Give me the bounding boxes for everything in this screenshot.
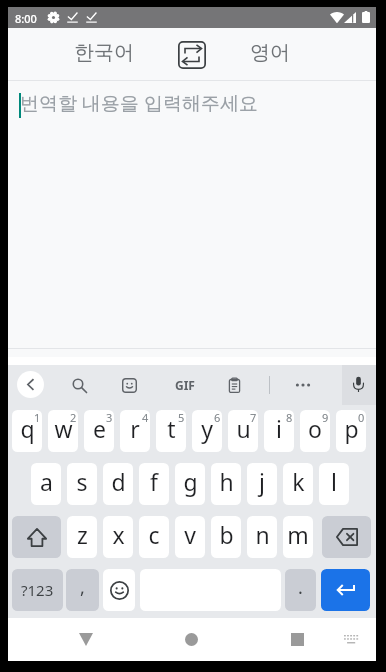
staticText: z [77, 519, 88, 550]
button[interactable]: . [285, 569, 316, 611]
button[interactable]: , [66, 569, 99, 611]
button[interactable]: Search [65, 365, 93, 405]
staticText: 번역할 내용을 입력해주세요 [20, 90, 258, 116]
button[interactable]: Recents [269, 618, 325, 661]
button[interactable]: w [48, 410, 78, 452]
staticText: d [111, 466, 126, 497]
button[interactable]: Switch keyboard [334, 618, 368, 661]
staticText: w [54, 413, 73, 444]
button[interactable]: Home [163, 618, 219, 661]
button[interactable]: b [211, 516, 241, 558]
staticText: u [236, 413, 251, 444]
button[interactable]: e [84, 410, 114, 452]
staticText: b [219, 519, 234, 550]
button[interactable]: n [247, 516, 277, 558]
button[interactable]: 번역할 내용을 입력해주세요 [8, 81, 376, 357]
button[interactable]: More options [289, 365, 317, 405]
other: Space [8, 569, 149, 611]
button[interactable]: c [139, 516, 169, 558]
button[interactable]: 영어 [232, 28, 308, 81]
button[interactable]: Swap languages [178, 41, 206, 69]
button[interactable]: l [319, 463, 349, 505]
staticText: 9 [322, 410, 329, 425]
staticText: 8:00 [15, 11, 37, 26]
staticText: j [259, 466, 265, 497]
staticText: e [93, 413, 106, 444]
other: Emoji [8, 569, 40, 611]
button[interactable]: q [12, 410, 42, 452]
button[interactable]: Clipboard [220, 365, 248, 405]
button[interactable] [12, 516, 61, 558]
staticText: 7 [250, 410, 257, 425]
staticText: 영어 [250, 40, 290, 65]
button[interactable] [103, 569, 135, 611]
staticText: a [40, 466, 53, 497]
button[interactable]: g [175, 463, 205, 505]
button[interactable]: Back [17, 371, 44, 398]
button[interactable]: ?123 [12, 569, 63, 611]
button[interactable]: r [120, 410, 150, 452]
button[interactable]: f [139, 463, 169, 505]
staticText: 5 [178, 410, 185, 425]
staticText: g [183, 466, 198, 497]
button[interactable]: u [228, 410, 258, 452]
button[interactable]: 한국어 [66, 28, 142, 81]
button[interactable]: y [192, 410, 222, 452]
staticText: 0 [358, 410, 365, 425]
staticText: GIF [175, 377, 195, 393]
staticText: 8 [286, 410, 293, 425]
staticText: 한국어 [74, 40, 134, 65]
staticText: o [308, 413, 322, 444]
button[interactable]: j [247, 463, 277, 505]
button[interactable]: a [31, 463, 61, 505]
staticText: n [255, 519, 270, 550]
button[interactable]: Back [58, 618, 114, 661]
button[interactable]: Voice input [342, 365, 376, 405]
staticText: 6 [214, 410, 221, 425]
staticText: 2 [70, 410, 77, 425]
button[interactable]: s [67, 463, 97, 505]
staticText: 1 [34, 410, 41, 425]
staticText: l [331, 466, 337, 497]
button[interactable]: GIF [170, 365, 200, 405]
button[interactable]: m [283, 516, 313, 558]
button[interactable]: d [103, 463, 133, 505]
button[interactable]: z [67, 516, 97, 558]
button[interactable]: h [211, 463, 241, 505]
button[interactable]: v [175, 516, 205, 558]
button[interactable] [322, 516, 371, 558]
staticText: s [76, 466, 88, 497]
button[interactable]: x [103, 516, 133, 558]
staticText: ?123 [21, 580, 54, 600]
other: Shift [8, 516, 57, 558]
button[interactable]: k [283, 463, 313, 505]
staticText: h [219, 466, 234, 497]
staticText: t [167, 413, 176, 444]
staticText: p [344, 413, 359, 444]
staticText: , [80, 575, 85, 600]
staticText: i [276, 413, 282, 444]
staticText: c [148, 519, 160, 550]
staticText: v [184, 519, 196, 550]
button[interactable]: p [336, 410, 366, 452]
staticText: k [292, 466, 305, 497]
button[interactable]: Stickers [115, 365, 143, 405]
staticText: r [130, 413, 140, 444]
button[interactable]: t [156, 410, 186, 452]
staticText: f [150, 466, 158, 497]
staticText: 3 [106, 410, 113, 425]
other: Backspace [8, 516, 57, 558]
staticText: 4 [142, 410, 149, 425]
staticText: y [201, 413, 213, 444]
staticText: m [287, 519, 309, 550]
staticText: x [112, 519, 125, 550]
staticText: . [298, 575, 303, 600]
other: Enter [8, 569, 57, 611]
staticText: q [20, 413, 35, 444]
button[interactable]: o [300, 410, 330, 452]
button[interactable]: i [264, 410, 294, 452]
button[interactable] [321, 569, 370, 611]
